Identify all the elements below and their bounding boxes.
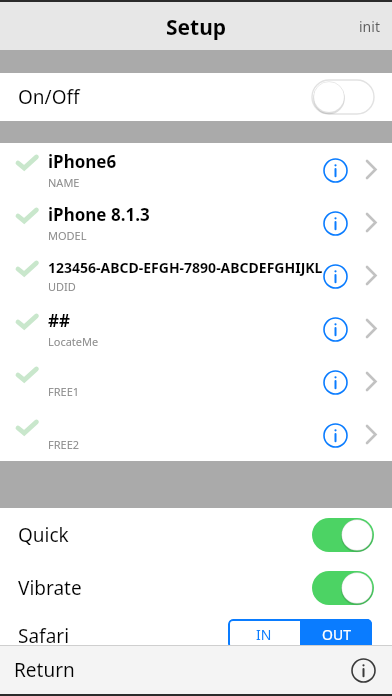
staticText: iPhone6	[48, 150, 117, 173]
staticText: IN	[256, 625, 272, 644]
staticText: Return	[14, 657, 75, 683]
button[interactable]: iPhone 8.1.3	[0, 196, 392, 249]
button[interactable]: FREE1	[0, 355, 392, 408]
staticText: iPhone 8.1.3	[48, 203, 150, 226]
button[interactable]: Return	[0, 649, 89, 691]
button[interactable]: Info	[318, 418, 352, 452]
button[interactable]: OUT	[300, 619, 372, 649]
staticText: init	[359, 17, 380, 36]
staticText: Safari	[18, 623, 70, 649]
button[interactable]: 123456-ABCD-EFGH-7890-ABCDEFGHIJKL	[0, 249, 392, 302]
button[interactable]: Switch off	[312, 80, 374, 114]
staticText: 123456-ABCD-EFGH-7890-ABCDEFGHIJKL	[48, 258, 323, 277]
staticText: ##	[48, 309, 70, 332]
staticText: Vibrate	[18, 575, 82, 601]
button[interactable]: Info	[346, 653, 380, 687]
button[interactable]: Info	[318, 206, 352, 240]
button[interactable]: Vibrate	[0, 561, 392, 614]
staticText: MODEL	[48, 228, 87, 243]
button[interactable]: Safari	[0, 614, 392, 658]
button[interactable]: init	[347, 9, 392, 44]
button[interactable]: On/Off	[0, 73, 392, 121]
button[interactable]: Info	[318, 365, 352, 399]
button[interactable]: Switch on	[312, 571, 374, 605]
button[interactable]: ##	[0, 302, 392, 355]
button[interactable]: Info	[318, 259, 352, 293]
button[interactable]: iPhone6	[0, 143, 392, 196]
button[interactable]: Quick	[0, 508, 392, 561]
button[interactable]: Switch on	[312, 518, 374, 552]
staticText: OUT	[322, 625, 351, 644]
button[interactable]: IN	[228, 619, 300, 649]
staticText: Quick	[18, 522, 69, 548]
staticText: On/Off	[18, 84, 80, 110]
button[interactable]: Info	[318, 153, 352, 187]
button[interactable]: FREE2	[0, 408, 392, 461]
staticText: FREE1	[48, 384, 80, 399]
staticText: LocateMe	[48, 334, 99, 349]
staticText: UDID	[48, 279, 76, 294]
staticText: NAME	[48, 175, 80, 190]
staticText: Setup	[166, 13, 227, 42]
button[interactable]: Info	[318, 312, 352, 346]
staticText: FREE2	[48, 437, 80, 452]
